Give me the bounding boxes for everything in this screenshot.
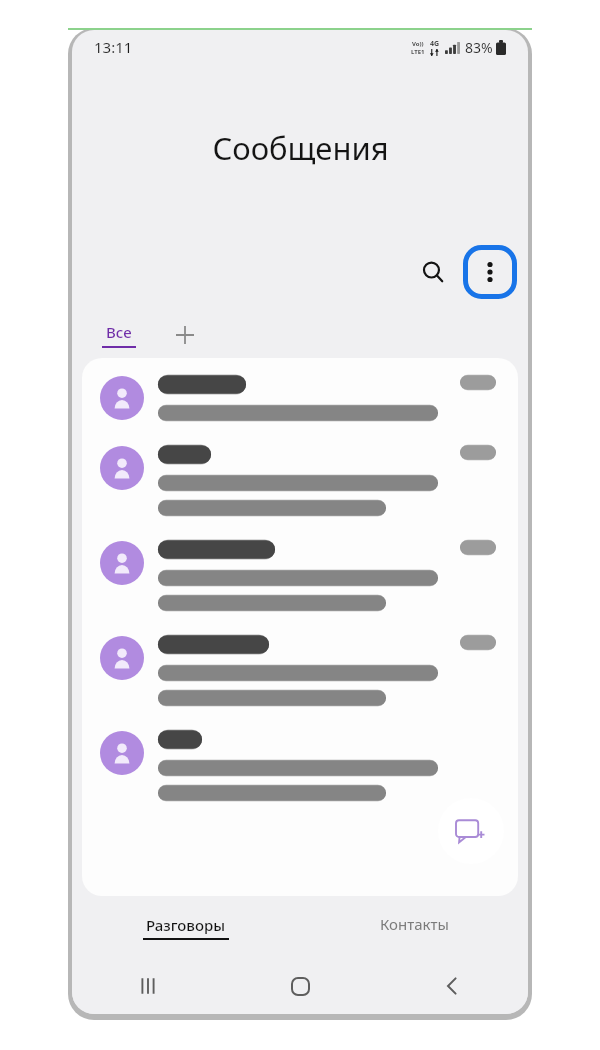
staticText: 83% bbox=[465, 38, 493, 57]
button[interactable]: Контакты bbox=[300, 896, 528, 958]
button[interactable]: Ещё bbox=[462, 244, 518, 300]
button[interactable]: Поиск bbox=[410, 249, 456, 295]
button[interactable]: Назад bbox=[376, 958, 528, 1014]
staticText: Vo)) bbox=[412, 40, 424, 48]
staticText: Все bbox=[106, 322, 132, 342]
staticText: LTE1 bbox=[411, 48, 425, 56]
button[interactable] bbox=[82, 422, 518, 517]
button[interactable]: Главный экран bbox=[224, 958, 376, 1014]
button[interactable]: Добавить bbox=[168, 318, 202, 352]
button[interactable] bbox=[82, 707, 518, 802]
button[interactable]: Обзор bbox=[72, 958, 224, 1014]
staticText: 4G bbox=[430, 39, 440, 49]
staticText: 13:11 bbox=[94, 37, 133, 57]
staticText: Разговоры bbox=[146, 915, 226, 935]
button[interactable] bbox=[82, 612, 518, 707]
button[interactable]: Все bbox=[96, 320, 142, 350]
button[interactable] bbox=[82, 358, 518, 422]
staticText: Сообщения bbox=[212, 127, 389, 169]
button[interactable] bbox=[82, 517, 518, 612]
button[interactable]: Разговоры bbox=[72, 896, 300, 958]
button[interactable]: Новое сообщение bbox=[438, 798, 504, 864]
staticText: Контакты bbox=[380, 914, 449, 934]
